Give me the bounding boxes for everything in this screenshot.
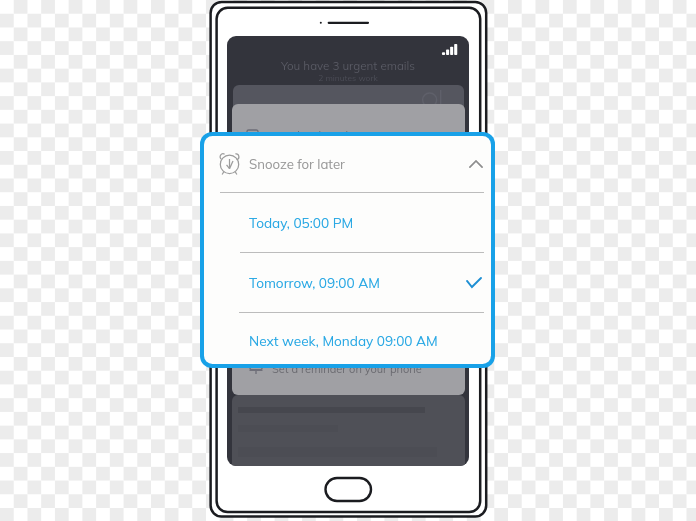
button[interactable]: Snooze for later: [204, 136, 491, 192]
button[interactable]: Collapse: [465, 153, 487, 175]
staticText: Tomorrow, 09:00 AM: [249, 274, 380, 291]
staticText: Snooze for later: [249, 156, 345, 173]
button[interactable]: Next week, Monday 09:00 AM: [204, 313, 491, 364]
staticText: 2 minutes work: [227, 73, 469, 84]
button[interactable]: Tomorrow, 09:00 AM: [204, 253, 491, 312]
staticText: You have 3 urgent emails: [227, 58, 469, 73]
staticText: Today, 05:00 PM: [249, 214, 354, 231]
staticText: Mute this thread: [265, 129, 349, 143]
button[interactable]: Today, 05:00 PM: [204, 193, 491, 252]
staticText: Set a reminder on your phone: [272, 362, 422, 376]
staticText: Next week, Monday 09:00 AM: [249, 332, 438, 349]
